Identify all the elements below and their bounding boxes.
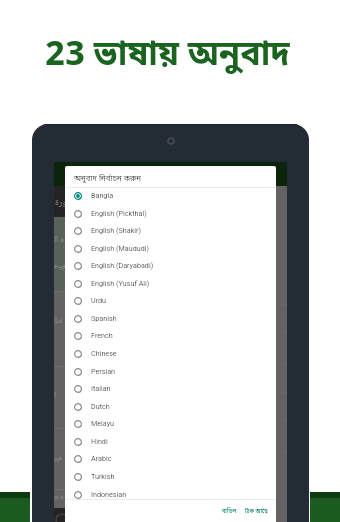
button[interactable]: Urdu [65, 291, 276, 309]
staticText: Spanish [91, 314, 117, 322]
staticText: Italian [91, 384, 111, 392]
staticText: Dutch [91, 402, 110, 410]
staticText: English (Yusuf Ali) [91, 279, 150, 287]
staticText: ﻢﻴﺣ [54, 258, 67, 273]
button[interactable]: ঠিক আছে [241, 504, 276, 519]
staticText: ﻪﺟ [54, 489, 64, 503]
staticText: Hindi [91, 437, 108, 445]
button[interactable]: English (Pickthal) [65, 204, 276, 222]
button[interactable]: Indonesian [65, 485, 276, 503]
button[interactable]: Dutch [65, 397, 276, 415]
button[interactable]: English (Maududi) [65, 239, 276, 257]
staticText: Melayu [91, 419, 115, 427]
staticText: ﻪ ﺍﻟ [54, 232, 65, 247]
button[interactable]: Chinese [65, 344, 276, 362]
button[interactable]: Hindi [65, 432, 276, 450]
button[interactable]: Persian [65, 362, 276, 380]
staticText: ﺳﻮﺭﺓ [55, 195, 73, 210]
staticText: ﻢﻴ [54, 450, 62, 465]
button[interactable]: Italian [65, 379, 276, 397]
button[interactable]: Turkish [65, 467, 276, 485]
button[interactable]: English (Yusuf Ali) [65, 274, 276, 292]
staticText: Turkish [91, 472, 115, 480]
button[interactable]: Spanish [65, 309, 276, 327]
button[interactable]: English (Daryabadi) [65, 256, 276, 274]
staticText: English (Daryabadi) [91, 261, 154, 269]
staticText: 23 ভাষায় অনুবাদ [45, 34, 290, 79]
staticText: Indonesian [91, 490, 127, 498]
staticText: French [91, 331, 113, 339]
button[interactable]: বাতিল [218, 504, 241, 519]
staticText: ﺍ [54, 388, 57, 403]
staticText: অনুবাদ নির্বাচন করুন [74, 174, 142, 184]
staticText: Chinese [91, 349, 117, 357]
staticText: ঠিক আছে [245, 508, 268, 515]
staticText: Bangla [91, 191, 114, 199]
staticText: Urdu [91, 296, 107, 304]
staticText: বাতিল [222, 508, 237, 515]
staticText: English (Maududi) [91, 244, 149, 252]
button[interactable]: Bangla [65, 186, 276, 204]
staticText: English (Shakir) [91, 226, 141, 234]
staticText: Persian [91, 367, 116, 375]
button[interactable]: French [65, 326, 276, 344]
staticText: Arabic [91, 454, 112, 462]
button[interactable]: Arabic [65, 449, 276, 467]
staticText: English (Pickthal) [91, 209, 147, 217]
staticText: ﻪﻠﻟ [54, 313, 63, 328]
button[interactable]: Melayu [65, 414, 276, 432]
button[interactable]: English (Shakir) [65, 221, 276, 239]
